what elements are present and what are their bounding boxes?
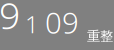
staticText: 重整 [87,28,113,44]
staticText: 9 [0,0,20,40]
button[interactable]: 重整 [87,28,113,44]
staticText: 1 [25,8,39,40]
staticText: 09 [45,3,79,42]
